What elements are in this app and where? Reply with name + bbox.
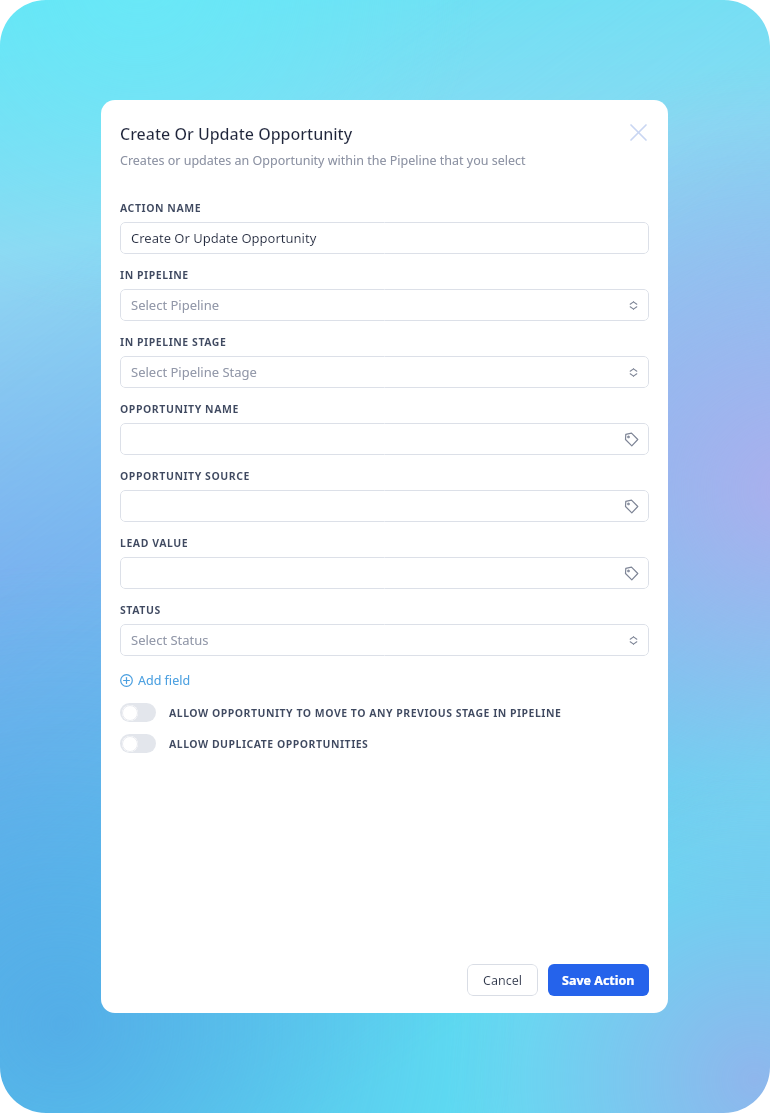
staticText: Select Pipeline (131, 296, 220, 314)
staticText: Create Or Update Opportunity (131, 229, 317, 247)
button[interactable]: Select Status (120, 624, 649, 656)
button[interactable] (120, 557, 649, 589)
staticText: Cancel (483, 972, 522, 989)
staticText: STATUS (120, 603, 161, 617)
staticText: ALLOW OPPORTUNITY TO MOVE TO ANY PREVIOU… (169, 706, 562, 720)
staticText: IN PIPELINE (120, 268, 189, 282)
staticText: Save Action (562, 972, 635, 989)
button[interactable]: ALLOW DUPLICATE OPPORTUNITIES (120, 734, 649, 753)
staticText: OPPORTUNITY NAME (120, 402, 239, 416)
button[interactable]: Close (620, 114, 656, 150)
button[interactable]: Create Or Update Opportunity (120, 222, 649, 254)
staticText: ALLOW DUPLICATE OPPORTUNITIES (169, 737, 369, 751)
staticText: IN PIPELINE STAGE (120, 335, 227, 349)
staticText: OPPORTUNITY SOURCE (120, 469, 250, 483)
staticText: Select Pipeline Stage (131, 363, 257, 381)
staticText: Add field (138, 672, 191, 689)
button[interactable]: ALLOW OPPORTUNITY TO MOVE TO ANY PREVIOU… (120, 703, 649, 722)
staticText: Create Or Update Opportunity (120, 123, 353, 145)
button[interactable]: Add field (120, 672, 191, 689)
button[interactable]: Select Pipeline Stage (120, 356, 649, 388)
staticText: Creates or updates an Opportunity within… (120, 152, 526, 169)
staticText: ACTION NAME (120, 201, 202, 215)
staticText: Select Status (131, 631, 209, 649)
button[interactable]: Cancel (467, 964, 538, 996)
button[interactable]: Save Action (548, 964, 649, 996)
button[interactable]: Select Pipeline (120, 289, 649, 321)
button[interactable] (120, 423, 649, 455)
button[interactable] (120, 490, 649, 522)
staticText: LEAD VALUE (120, 536, 189, 550)
